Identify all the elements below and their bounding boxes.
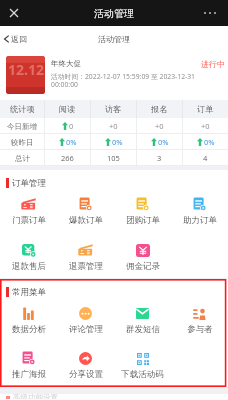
staticText: 活动管理 <box>94 7 134 20</box>
staticText: 0% <box>66 137 77 147</box>
staticText: 0% <box>112 137 123 147</box>
button[interactable]: 团购订单 <box>114 197 171 229</box>
staticText: 订单 <box>197 104 214 114</box>
staticText: 0% <box>204 137 215 147</box>
staticText: 访客 <box>105 104 122 114</box>
button[interactable]: 助力订单 <box>171 197 228 229</box>
button[interactable]: 参与者 <box>171 306 228 338</box>
staticText: 佣金记录 <box>126 261 160 272</box>
staticText: +0 <box>109 121 118 131</box>
button[interactable]: 12.12 <box>0 51 228 100</box>
staticText: 统计项 <box>10 104 35 114</box>
staticText: 分享设置 <box>69 369 103 380</box>
staticText: 266 <box>61 153 74 163</box>
staticText: 3 <box>157 153 162 163</box>
staticText: 返回 <box>11 34 27 44</box>
button[interactable]: 分享设置 <box>57 351 114 383</box>
staticText: 退票管理 <box>69 261 103 272</box>
staticText: 退款售后 <box>12 261 46 272</box>
staticText: 门票订单 <box>12 215 46 226</box>
staticText: 进行中 <box>201 59 225 69</box>
button[interactable]: 返回 <box>4 30 27 48</box>
staticText: 群发短信 <box>126 324 160 335</box>
staticText: +0 <box>155 121 164 131</box>
staticText: 数据分析 <box>12 324 46 335</box>
button[interactable]: 群发短信 <box>114 306 171 338</box>
staticText: 0 <box>69 121 74 131</box>
button[interactable]: 退票管理 <box>57 243 114 275</box>
staticText: 年终大促 <box>51 59 81 68</box>
staticText: 12.12 <box>8 60 44 79</box>
staticText: 报名 <box>151 104 168 114</box>
staticText: +0 <box>201 121 210 131</box>
staticText: 总计 <box>15 154 30 163</box>
staticText: 0% <box>158 137 169 147</box>
staticText: 推广海报 <box>12 369 46 380</box>
button[interactable]: 门票订单 <box>0 197 57 229</box>
staticText: 00:00:00 <box>51 80 78 89</box>
staticText: 常用菜单 <box>12 287 46 297</box>
button[interactable]: 评论管理 <box>57 306 114 338</box>
staticText: 下载活动码 <box>121 369 164 380</box>
staticText: 今日新增 <box>7 122 37 131</box>
staticText: 助力订单 <box>183 215 217 226</box>
staticText: 爆款订单 <box>69 215 103 226</box>
staticText: 4 <box>203 153 208 163</box>
button[interactable]: 爆款订单 <box>57 197 114 229</box>
staticText: 订单管理 <box>12 178 46 188</box>
button[interactable]: 退款售后 <box>0 243 57 275</box>
button[interactable]: 推广海报 <box>0 351 57 383</box>
staticText: 活动管理 <box>98 34 130 44</box>
staticText: 105 <box>107 153 120 163</box>
staticText: 评论管理 <box>69 324 103 335</box>
button[interactable]: 佣金记录 <box>114 243 171 275</box>
staticText: 高级功能设置 <box>13 393 58 399</box>
staticText: 活动时间：2022-12-07 15:59:09 至 2023-12-31 <box>51 72 196 81</box>
button[interactable]: 数据分析 <box>0 306 57 338</box>
staticText: 阅读 <box>59 104 76 114</box>
button[interactable]: Close <box>6 5 22 21</box>
button[interactable]: More options <box>204 5 222 21</box>
staticText: 参与者 <box>187 324 213 335</box>
button[interactable]: 下载活动码 <box>114 351 171 383</box>
staticText: 较昨日 <box>11 138 34 147</box>
staticText: 团购订单 <box>126 215 160 226</box>
